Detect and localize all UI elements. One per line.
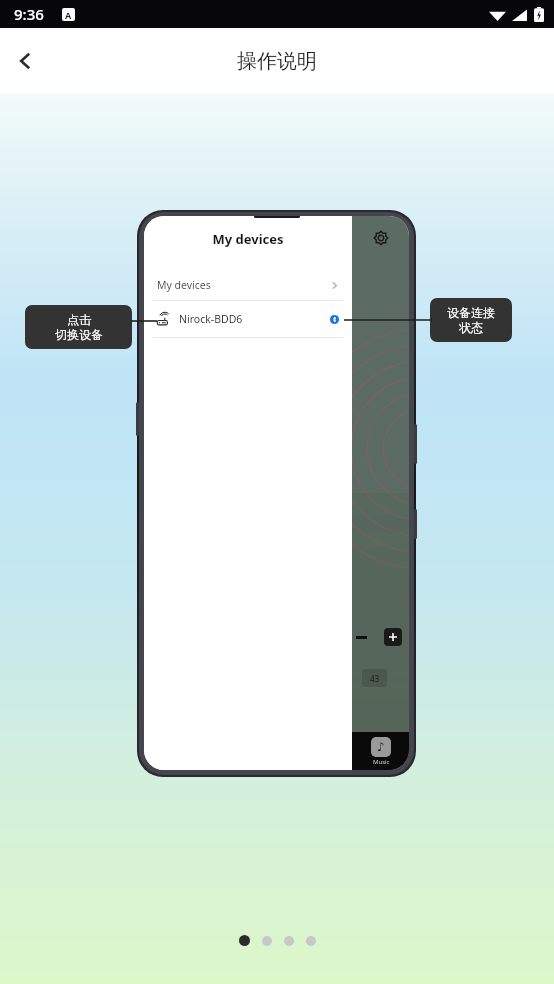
staticText: 43 (370, 673, 380, 684)
staticText: 操作说明 (237, 49, 317, 74)
staticText: 切换设备 (55, 327, 103, 342)
button[interactable]: 设备连接 (430, 298, 512, 342)
button[interactable]: My devices (144, 270, 352, 300)
staticText: My devices (144, 230, 352, 248)
staticText: 点击 (67, 312, 91, 327)
staticText: 设备连接 (447, 305, 495, 320)
staticText: A (65, 9, 72, 21)
staticText: 9:36 (14, 4, 44, 24)
button[interactable]: Settings (369, 226, 393, 250)
button[interactable]: Add (384, 628, 402, 646)
staticText: Music (373, 758, 390, 766)
staticText: ♪ (377, 740, 385, 754)
button[interactable]: 点击 (25, 305, 132, 349)
staticText: Nirock-BDD6 (179, 312, 243, 326)
button[interactable]: Nirock-BDD6 (144, 301, 352, 337)
staticText: 状态 (459, 320, 483, 335)
staticText: My devices (157, 278, 211, 292)
button[interactable]: Back (0, 35, 52, 87)
